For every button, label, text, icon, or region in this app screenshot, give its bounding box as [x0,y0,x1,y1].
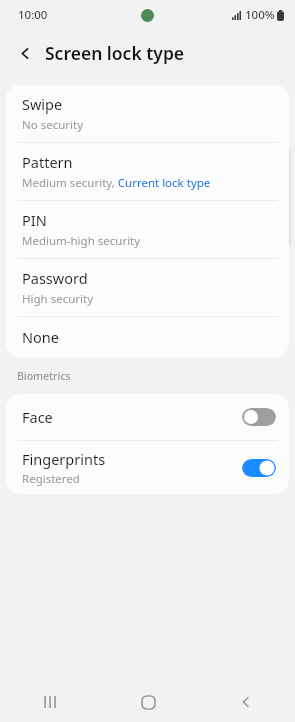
staticText: Biometrics [17,369,71,383]
staticText: Password [22,268,88,288]
button[interactable]: Navigate up [8,36,42,70]
staticText: PIN [22,210,47,230]
button[interactable]: Recent apps [0,682,99,722]
button[interactable]: Home [99,682,197,722]
staticText: 100% [245,7,275,23]
staticText: Fingerprints [22,449,106,469]
button[interactable]: Back [197,682,295,722]
button[interactable]: Face [6,394,289,440]
staticText: High security [22,291,94,307]
staticText: Medium-high security [22,233,141,249]
button[interactable]: Face off [242,408,276,426]
button[interactable]: Fingerprints [6,441,289,494]
staticText: Registered [22,471,80,487]
staticText: None [22,327,59,347]
staticText: 10:00 [18,7,48,23]
staticText: Swipe [22,94,63,114]
button[interactable]: Pattern [6,143,289,200]
button[interactable]: Password [6,259,289,316]
staticText: Pattern [22,152,73,172]
staticText: Face [22,407,53,427]
button[interactable]: PIN [6,201,289,258]
button[interactable]: Swipe [6,85,289,142]
button[interactable]: Fingerprints on [242,459,276,477]
staticText: No security [22,117,84,133]
staticText: Medium security, Current lock type [22,175,211,191]
button[interactable]: None [6,317,289,357]
staticText: Screen lock type [45,41,185,65]
